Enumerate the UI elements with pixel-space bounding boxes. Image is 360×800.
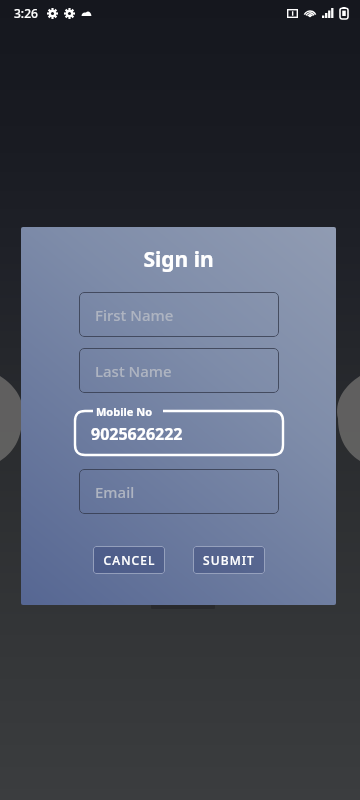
button[interactable]: CANCEL <box>93 546 165 574</box>
staticText: Mobile No <box>96 404 153 419</box>
staticText: CANCEL <box>103 552 156 568</box>
button[interactable]: SUBMIT <box>193 546 265 574</box>
staticText: 3:26 <box>14 5 38 21</box>
staticText: First Name <box>95 305 174 325</box>
staticText: SUBMIT <box>203 552 255 568</box>
button[interactable]: Last Name <box>79 348 279 393</box>
button[interactable]: Email <box>79 469 279 514</box>
staticText: Email <box>95 482 135 502</box>
staticText: 9025626222 <box>91 423 183 445</box>
staticText: Sign in <box>143 245 214 274</box>
button[interactable]: Mobile No <box>75 403 283 455</box>
staticText: Last Name <box>95 361 172 381</box>
button[interactable]: First Name <box>79 292 279 337</box>
